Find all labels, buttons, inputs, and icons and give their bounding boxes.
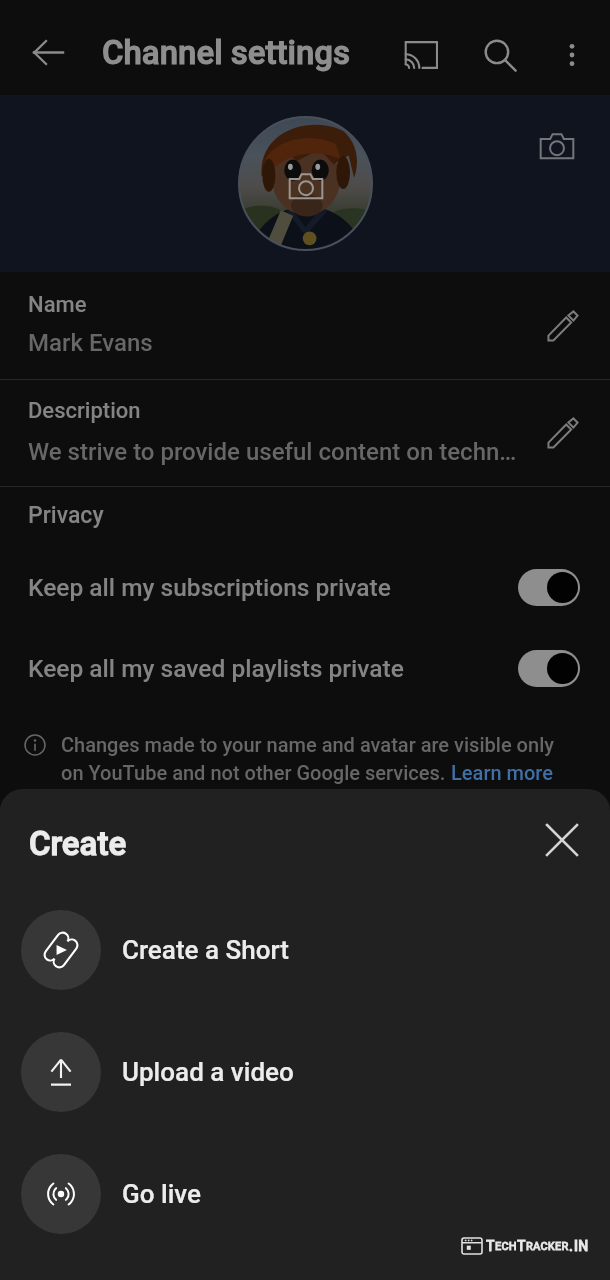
staticText: T [517,1238,526,1254]
button[interactable]: Keep all my saved playlists private [0,628,610,709]
staticText: RACKER [526,1240,569,1253]
button[interactable]: Edit description [537,407,589,459]
staticText: Channel settings [102,33,351,72]
button[interactable]: Description [0,380,610,486]
button[interactable]: More options [546,29,598,81]
button[interactable]: Keep all my subscriptions private [0,547,610,628]
staticText: Keep all my saved playlists private [28,654,404,683]
button[interactable]: Search [472,27,528,83]
staticText: We strive to provide useful content on t… [28,438,517,466]
button[interactable]: Change banner image [533,121,581,169]
staticText: on YouTube and not other Google services… [61,761,451,784]
button[interactable]: Change profile picture [237,115,374,252]
button[interactable]: Create a Short [0,889,610,1011]
button[interactable]: Close [534,812,590,868]
staticText: Create a Short [122,935,289,965]
staticText: Changes made to your name and avatar are… [61,733,554,756]
staticText: Upload a video [122,1057,294,1087]
button[interactable]: Back [22,26,74,78]
staticText: Name [28,292,87,318]
staticText: IN [574,1238,589,1254]
staticText: Mark Evans [28,329,153,357]
staticText: Privacy [28,502,104,529]
staticText: T [486,1238,495,1254]
staticText: . [569,1238,574,1254]
staticText: ECH [495,1240,517,1253]
button[interactable]: Edit name [537,300,589,352]
button[interactable]: Cast [393,27,449,83]
staticText: Description [28,398,141,424]
button[interactable]: Upload a video [0,1011,610,1133]
button[interactable]: Go live [0,1133,610,1255]
button[interactable]: Name [0,272,610,379]
staticText: Create [29,824,127,863]
staticText: Keep all my subscriptions private [28,573,391,602]
button[interactable]: Learn more [451,761,553,784]
staticText: Go live [122,1179,201,1209]
